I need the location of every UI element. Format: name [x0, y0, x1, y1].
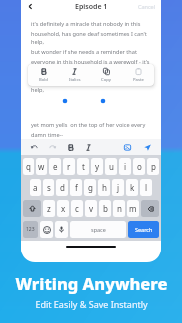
button[interactable]: b — [99, 200, 111, 217]
staticText: p — [151, 161, 156, 172]
button[interactable]: g — [84, 179, 96, 196]
staticText: y — [95, 161, 100, 172]
staticText: g — [88, 182, 93, 193]
button[interactable]: o — [133, 158, 145, 175]
button[interactable]: e — [49, 158, 61, 175]
staticText: Paste — [133, 77, 144, 83]
staticText: z — [47, 203, 51, 214]
staticText: o — [137, 161, 142, 172]
button[interactable]: s — [43, 179, 54, 196]
staticText: r — [67, 161, 71, 172]
button[interactable]: Shift — [23, 200, 41, 217]
staticText: j — [117, 182, 120, 193]
staticText: it's definitely a miracle that nobody in… — [31, 20, 141, 28]
staticText: s — [47, 182, 51, 193]
button[interactable]: f — [70, 179, 82, 196]
button[interactable]: Cancel — [138, 3, 156, 10]
button[interactable]: r — [63, 158, 75, 175]
button[interactable]: l — [140, 179, 152, 196]
button[interactable]: u — [105, 158, 117, 175]
button[interactable]: Search — [128, 221, 159, 238]
button[interactable]: n — [113, 200, 125, 217]
staticText: damn time-- — [31, 131, 64, 139]
button[interactable]: Paste — [122, 64, 154, 86]
staticText: yet mom yells on the top of her voice ev… — [31, 121, 146, 129]
staticText: v — [89, 203, 94, 214]
staticText: n — [117, 203, 122, 214]
button[interactable]: Italics — [59, 64, 90, 86]
button[interactable]: Bold — [28, 64, 59, 86]
button[interactable]: t — [77, 158, 89, 175]
button[interactable]: j — [112, 179, 124, 196]
staticText: Bold — [39, 77, 48, 83]
staticText: Edit Easily & Save Instantly — [35, 298, 148, 310]
staticText: Search — [135, 226, 153, 233]
button[interactable]: 123 — [23, 221, 38, 238]
staticText: Copy — [101, 77, 111, 83]
staticText: u — [109, 161, 114, 172]
staticText: t — [82, 161, 85, 172]
button[interactable]: Insert image — [122, 142, 133, 153]
button[interactable]: z — [43, 200, 55, 217]
staticText: Writing Anywhere — [15, 272, 168, 294]
button[interactable]: k — [126, 179, 138, 196]
button[interactable]: Send — [142, 142, 153, 153]
staticText: Italics — [69, 77, 81, 83]
staticText: space — [91, 226, 106, 233]
button[interactable]: Backspace — [141, 200, 159, 217]
button[interactable]: m — [127, 200, 139, 217]
button[interactable]: Voice input — [55, 221, 68, 238]
staticText: x — [61, 203, 66, 214]
staticText: Episode 1 — [75, 2, 108, 12]
button[interactable]: Bold — [65, 142, 76, 153]
button[interactable]: c — [71, 200, 83, 217]
button[interactable]: Copy — [90, 64, 122, 86]
button[interactable]: p — [147, 158, 159, 175]
staticText: household, has gone deaf sometimes I can… — [31, 30, 155, 46]
button[interactable]: w — [36, 158, 47, 175]
staticText: w — [38, 161, 45, 172]
staticText: e — [53, 161, 58, 172]
button[interactable]: space — [70, 221, 126, 238]
staticText: definitely a miracle that nobody in this — [31, 68, 132, 76]
button[interactable]: Undo — [29, 142, 40, 153]
staticText: f — [75, 182, 78, 193]
button[interactable]: d — [56, 179, 68, 196]
staticText: but wonder if she needs a reminder that — [31, 48, 137, 56]
button[interactable]: v — [85, 200, 97, 217]
button[interactable]: Redo — [47, 142, 58, 153]
button[interactable]: y — [91, 158, 103, 175]
button[interactable]: h — [98, 179, 110, 196]
staticText: i — [124, 161, 127, 172]
staticText: everyone in this household is a werewolf… — [31, 58, 150, 66]
button[interactable]: a — [30, 179, 41, 196]
staticText: household, has gone deaf sometimes I can… — [31, 78, 155, 94]
staticText: 123 — [26, 226, 35, 233]
staticText: h — [102, 182, 107, 193]
button[interactable]: Emoji — [40, 221, 53, 238]
staticText: c — [75, 203, 79, 214]
button[interactable]: Back — [24, 0, 37, 13]
button[interactable]: i — [119, 158, 131, 175]
button[interactable]: q — [23, 158, 34, 175]
staticText: a — [33, 182, 38, 193]
staticText: b — [103, 203, 108, 214]
staticText: k — [130, 182, 135, 193]
staticText: l — [145, 182, 148, 193]
button[interactable]: Italic — [83, 142, 94, 153]
staticText: Cancel — [138, 3, 156, 10]
staticText: m — [129, 203, 137, 214]
staticText: q — [26, 161, 31, 172]
staticText: d — [60, 182, 65, 193]
button[interactable]: x — [57, 200, 69, 217]
